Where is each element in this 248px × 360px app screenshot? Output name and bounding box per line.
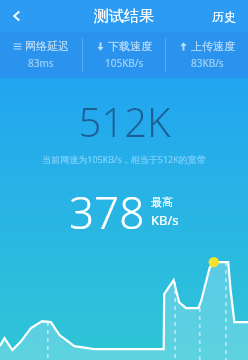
staticText: 网络延迟 — [25, 39, 69, 53]
button[interactable]: 上传速度 — [166, 32, 248, 78]
button[interactable]: Back — [0, 0, 34, 32]
staticText: 105KB/s — [105, 56, 144, 70]
button[interactable]: 历史 — [200, 0, 248, 32]
staticText: 上传速度 — [191, 39, 235, 53]
staticText: 最高 — [151, 195, 173, 209]
staticText: 历史 — [212, 9, 236, 24]
staticText: 378 — [69, 182, 145, 242]
staticText: 512K — [78, 94, 171, 148]
button[interactable]: 下载速度 — [83, 32, 165, 78]
staticText: 下载速度 — [108, 39, 152, 53]
staticText: 当前网速为105KB/s，相当于512K的宽带 — [42, 153, 206, 165]
staticText: 83ms — [28, 56, 54, 70]
staticText: 83KB/s — [191, 56, 224, 70]
button[interactable]: 网络延迟 — [0, 32, 82, 78]
staticText: 测试结果 — [94, 7, 154, 26]
staticText: KB/s — [151, 211, 179, 229]
